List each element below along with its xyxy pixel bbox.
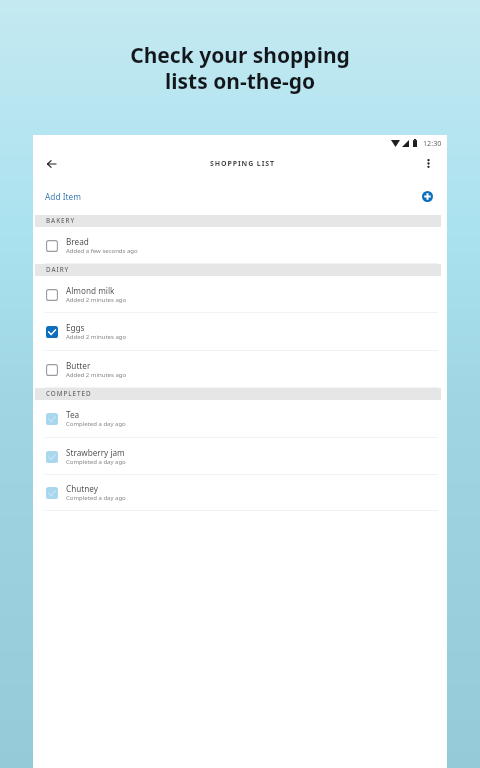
- button[interactable]: Strawberry jam: [33, 438, 447, 475]
- staticText: Added a few seconds ago: [66, 247, 138, 255]
- staticText: Check your shopping: [0, 41, 480, 70]
- staticText: lists on-the-go: [0, 67, 480, 96]
- button[interactable]: Back: [39, 152, 63, 176]
- staticText: Strawberry jam: [66, 447, 125, 458]
- staticText: Completed a day ago: [66, 458, 126, 466]
- button[interactable]: Tea: [33, 400, 447, 438]
- staticText: Tea: [66, 409, 80, 420]
- staticText: BAKERY: [46, 216, 76, 225]
- staticText: Almond milk: [66, 285, 115, 296]
- staticText: Completed a day ago: [66, 494, 126, 502]
- staticText: 12:30: [423, 138, 442, 148]
- button[interactable]: Bread: [33, 227, 447, 264]
- staticText: Added 2 minutes ago: [66, 296, 127, 304]
- button[interactable]: Add Item: [33, 188, 87, 207]
- staticText: SHOPPING LIST: [210, 159, 275, 169]
- staticText: Completed a day ago: [66, 420, 126, 428]
- button[interactable]: Almond milk: [33, 276, 447, 313]
- staticText: Chutney: [66, 483, 98, 494]
- staticText: Bread: [66, 236, 89, 247]
- button[interactable]: More options: [418, 153, 438, 173]
- button[interactable]: Add item: [422, 191, 433, 202]
- staticText: Butter: [66, 360, 91, 371]
- staticText: Eggs: [66, 322, 85, 333]
- staticText: Added 2 minutes ago: [66, 371, 127, 379]
- staticText: COMPLETED: [46, 389, 92, 398]
- button[interactable]: Butter: [33, 351, 447, 388]
- staticText: DAIRY: [46, 265, 70, 274]
- staticText: Added 2 minutes ago: [66, 333, 127, 341]
- button[interactable]: Chutney: [33, 474, 447, 511]
- button[interactable]: Eggs: [33, 313, 447, 351]
